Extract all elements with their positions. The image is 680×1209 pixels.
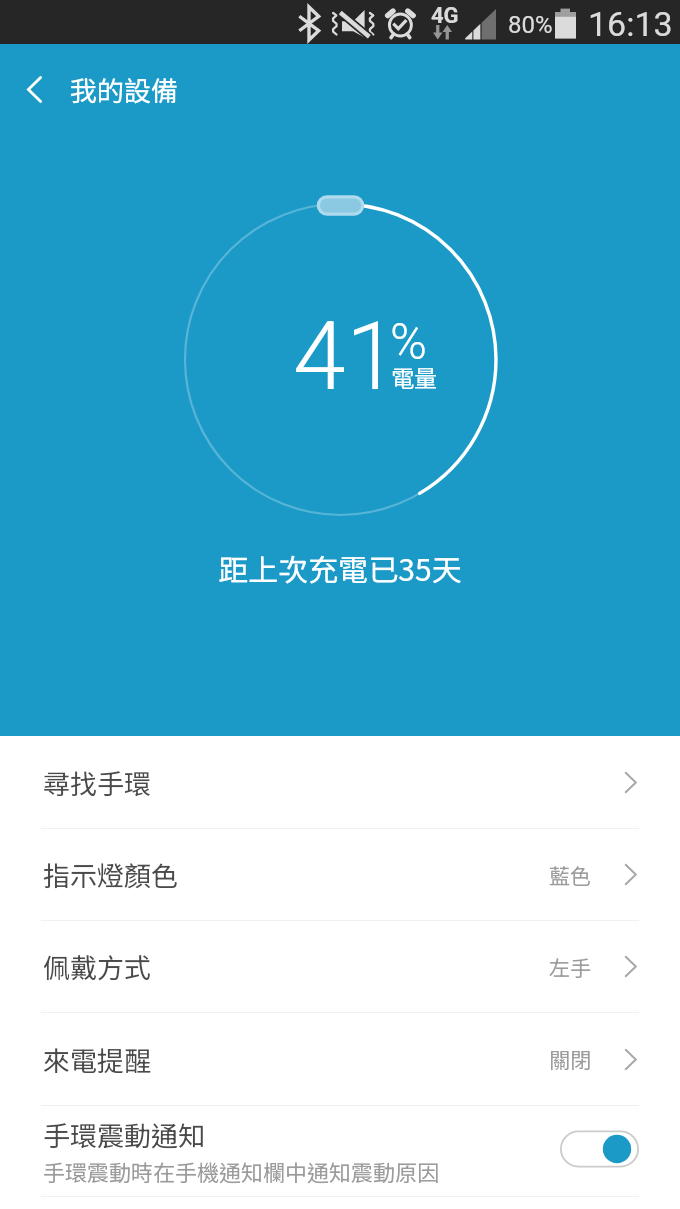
staticText: 4G — [431, 3, 459, 29]
staticText: 藍色 — [549, 860, 591, 890]
staticText: 關閉 — [549, 1044, 591, 1074]
staticText: 左手 — [549, 952, 591, 982]
staticText: 尋找手環 — [43, 763, 151, 802]
staticText: 80% — [508, 11, 553, 39]
staticText: 指示燈顏色 — [43, 855, 178, 894]
staticText: 41 — [293, 301, 399, 412]
staticText: 來電提醒 — [43, 1040, 151, 1079]
staticText: % — [390, 313, 427, 372]
staticText: 距上次充電已35天 — [0, 546, 680, 589]
staticText: 我的設備 — [70, 70, 178, 109]
button[interactable]: 佩戴方式 — [0, 921, 680, 1012]
button[interactable]: Vibration notification toggle — [560, 1128, 639, 1174]
staticText: 手環震動時在手機通知欄中通知震動原因 — [43, 1155, 440, 1187]
button[interactable]: 手環震動通知 — [0, 1106, 680, 1196]
button[interactable]: 指示燈顏色 — [0, 829, 680, 920]
button[interactable]: 來電提醒 — [0, 1013, 680, 1105]
button[interactable]: Back — [0, 44, 68, 136]
staticText: 佩戴方式 — [43, 947, 151, 986]
staticText: 電量 — [391, 360, 437, 393]
staticText: 手環震動通知 — [43, 1115, 205, 1154]
button[interactable]: 尋找手環 — [0, 736, 680, 828]
staticText: 16:13 — [588, 4, 673, 44]
